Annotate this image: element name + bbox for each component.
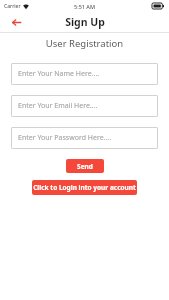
staticText: Carrier <box>4 3 21 10</box>
button[interactable]: Enter Your Name Here.... <box>11 63 158 85</box>
staticText: Enter Your Password Here.... <box>18 133 112 143</box>
staticText: Enter Your Email Here.... <box>18 101 98 111</box>
button[interactable]: Back <box>9 15 23 29</box>
staticText: Enter Your Name Here.... <box>18 69 100 79</box>
staticText: Click to Login into your account <box>33 183 136 192</box>
staticText: User Registration <box>0 37 169 50</box>
staticText: Sign Up <box>65 15 105 29</box>
staticText: 5:51 AM <box>74 3 96 10</box>
button[interactable]: Click to Login into your account <box>32 180 137 195</box>
button[interactable]: Send <box>66 159 104 173</box>
button[interactable]: Enter Your Password Here.... <box>11 127 158 149</box>
button[interactable]: Enter Your Email Here.... <box>11 95 158 117</box>
staticText: Send <box>77 162 93 171</box>
